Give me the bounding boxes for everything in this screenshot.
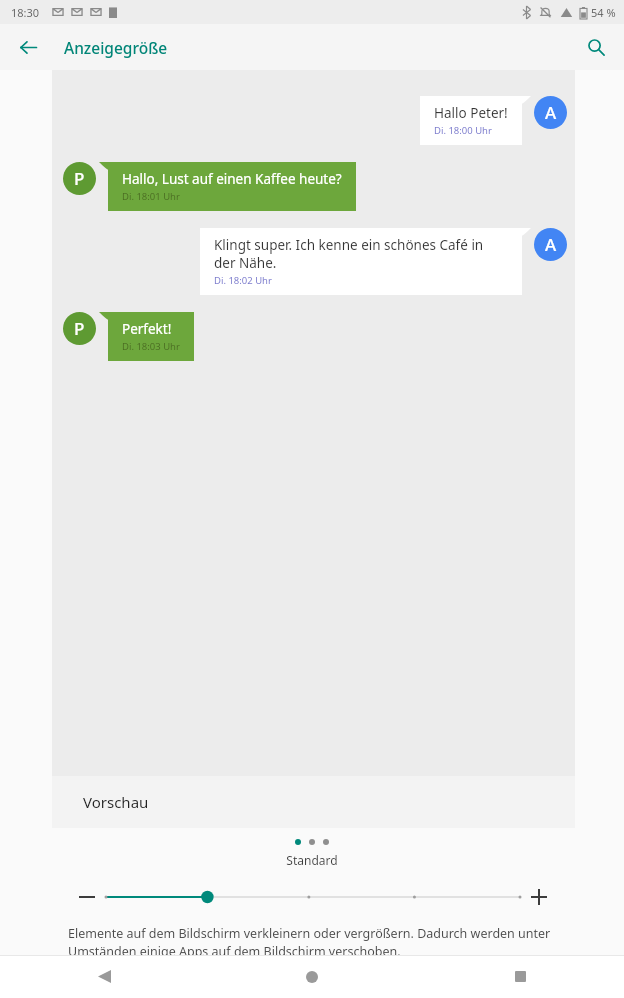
- staticText: Vorschau: [83, 792, 149, 812]
- staticText: Elemente auf dem Bildschirm verkleinern …: [68, 925, 564, 955]
- button[interactable]: Startbildschirm: [208, 955, 416, 998]
- button[interactable]: Verkleinern: [70, 880, 104, 914]
- staticText: P: [74, 167, 85, 190]
- staticText: Di. 18:00 Uhr: [434, 124, 492, 137]
- staticText: 18:30: [11, 5, 40, 20]
- button[interactable]: Anzeigegröße-Schieberegler: [104, 880, 522, 914]
- staticText: Di. 18:02 Uhr: [214, 274, 272, 287]
- staticText: A: [545, 233, 557, 256]
- staticText: Klingt super. Ich kenne ein schönes Café…: [214, 236, 508, 272]
- button[interactable]: Suchen: [576, 27, 616, 67]
- staticText: Hallo Peter!: [434, 104, 508, 122]
- staticText: 54 %: [591, 5, 616, 20]
- button[interactable]: Vergrößern: [522, 880, 556, 914]
- button[interactable]: Zurück: [0, 955, 208, 998]
- staticText: Di. 18:03 Uhr: [122, 340, 180, 353]
- staticText: Hallo, Lust auf einen Kaffee heute?: [122, 170, 342, 188]
- staticText: Perfekt!: [122, 320, 172, 338]
- staticText: Di. 18:01 Uhr: [122, 190, 180, 203]
- staticText: Anzeigegröße: [64, 37, 168, 58]
- staticText: Standard: [0, 852, 624, 868]
- button[interactable]: Zurück: [8, 27, 48, 67]
- staticText: P: [74, 317, 85, 340]
- button[interactable]: Übersicht: [416, 955, 624, 998]
- staticText: A: [545, 101, 557, 124]
